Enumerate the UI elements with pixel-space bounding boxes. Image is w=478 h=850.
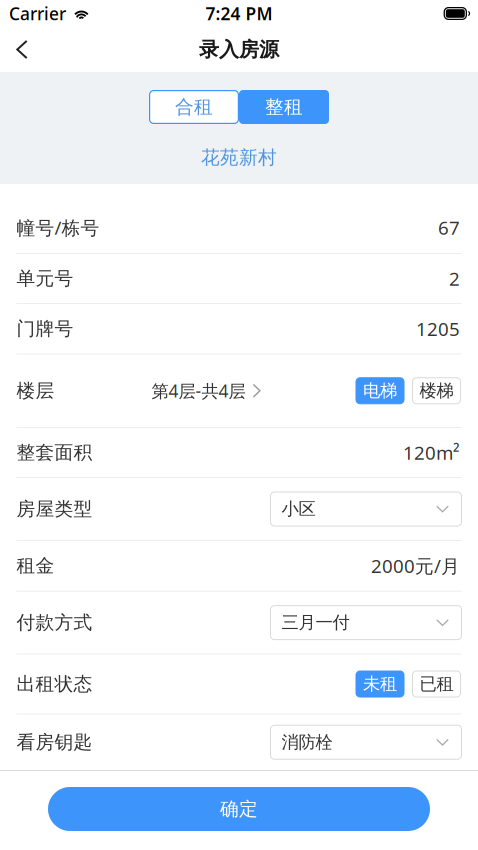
staticText: 2 bbox=[449, 266, 460, 291]
staticText: 三月一付 bbox=[281, 612, 349, 633]
button[interactable]: 消防栓 bbox=[270, 725, 462, 760]
staticText: 门牌号 bbox=[16, 317, 73, 340]
staticText: 出租状态 bbox=[16, 672, 92, 695]
staticText: 楼层 bbox=[16, 379, 54, 402]
staticText: 单元号 bbox=[16, 267, 73, 290]
staticText: 租金 bbox=[16, 554, 54, 577]
staticText: 看房钥匙 bbox=[16, 731, 92, 754]
button[interactable]: Back bbox=[0, 29, 44, 69]
button[interactable]: 第4层-共4层 bbox=[151, 379, 261, 402]
staticText: Carrier bbox=[9, 2, 66, 25]
staticText: 整租 bbox=[265, 95, 303, 118]
button[interactable]: 三月一付 bbox=[270, 605, 462, 640]
staticText: 录入房源 bbox=[199, 37, 279, 62]
button[interactable]: 楼梯 bbox=[412, 377, 461, 404]
staticText: 幢号/栋号 bbox=[16, 215, 99, 240]
staticText: 1205 bbox=[416, 316, 460, 341]
button[interactable]: 电梯 bbox=[355, 377, 404, 404]
button[interactable]: 已租 bbox=[412, 670, 461, 697]
staticText: 小区 bbox=[281, 498, 315, 520]
staticText: 未租 bbox=[363, 673, 397, 695]
staticText: 已租 bbox=[419, 673, 453, 695]
staticText: 67 bbox=[438, 215, 460, 240]
button[interactable]: 合租 bbox=[149, 90, 239, 124]
button[interactable]: 小区 bbox=[270, 491, 462, 526]
staticText: 整套面积 bbox=[16, 441, 92, 464]
staticText: 2000元/月 bbox=[371, 553, 460, 578]
staticText: 第4层-共4层 bbox=[151, 379, 245, 402]
staticText: 付款方式 bbox=[16, 611, 92, 634]
staticText: 楼梯 bbox=[419, 380, 453, 401]
staticText: 合租 bbox=[175, 95, 213, 118]
button[interactable]: 未租 bbox=[355, 670, 404, 697]
staticText: 消防栓 bbox=[281, 732, 332, 753]
staticText: 7:24 PM bbox=[205, 2, 272, 25]
staticText: 确定 bbox=[220, 797, 258, 820]
button[interactable]: 花苑新村 bbox=[201, 146, 277, 169]
staticText: 120m² bbox=[403, 440, 460, 465]
staticText: 花苑新村 bbox=[201, 146, 277, 169]
button[interactable]: 确定 bbox=[48, 787, 430, 831]
button[interactable]: 整租 bbox=[239, 90, 329, 124]
staticText: 房屋类型 bbox=[16, 497, 92, 520]
staticText: 电梯 bbox=[363, 380, 397, 401]
